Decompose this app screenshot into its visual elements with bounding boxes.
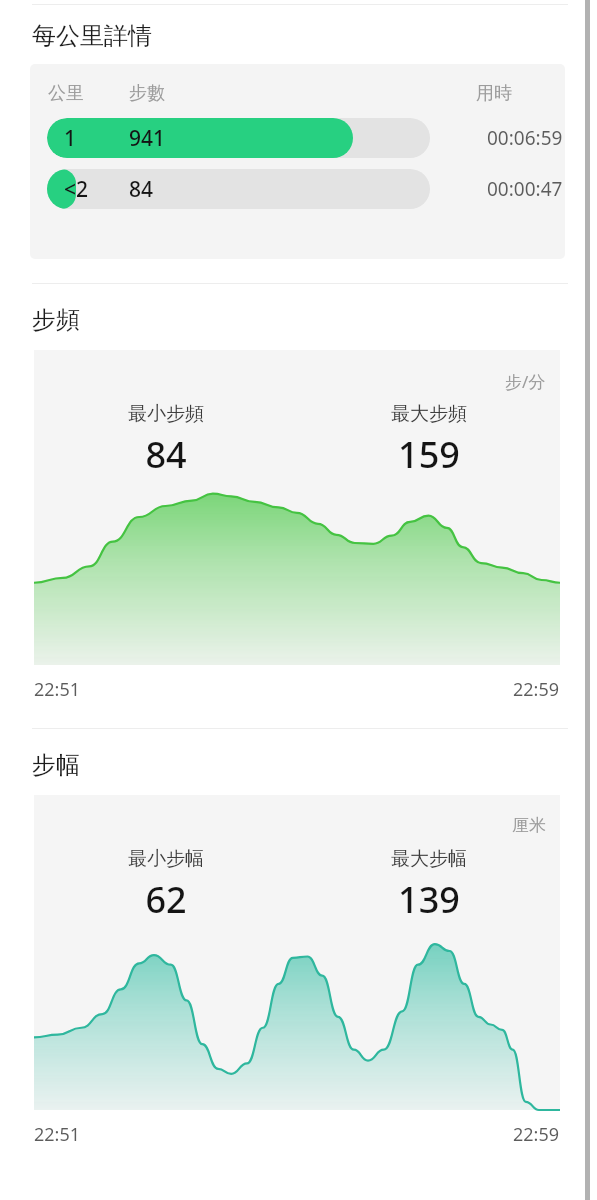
staticText: 步頻 <box>32 305 80 335</box>
staticText: 公里 <box>48 82 84 105</box>
staticText: 22:59 <box>513 1122 560 1147</box>
button[interactable]: <2 <box>30 169 565 209</box>
staticText: 厘米 <box>512 815 546 836</box>
button[interactable]: 步/分 <box>34 350 560 665</box>
staticText: 159 <box>398 430 460 479</box>
staticText: 139 <box>398 875 460 924</box>
staticText: 用時 <box>476 82 512 105</box>
staticText: 步幅 <box>32 750 80 780</box>
staticText: 941 <box>129 124 166 153</box>
staticText: 22:51 <box>34 1122 81 1147</box>
staticText: 步數 <box>129 82 165 105</box>
staticText: 00:06:59 <box>487 125 563 151</box>
staticText: 最大步頻 <box>391 402 467 426</box>
staticText: 00:00:47 <box>487 176 563 202</box>
button[interactable]: 1 <box>30 118 565 158</box>
button[interactable]: 公里 <box>30 64 565 259</box>
staticText: 22:51 <box>34 677 81 702</box>
staticText: <2 <box>64 175 89 204</box>
staticText: 最大步幅 <box>391 847 467 871</box>
button[interactable]: 厘米 <box>34 795 560 1110</box>
staticText: 最小步頻 <box>128 402 204 426</box>
staticText: 步/分 <box>505 370 546 393</box>
staticText: 84 <box>145 430 187 479</box>
staticText: 每公里詳情 <box>32 21 152 51</box>
staticText: 84 <box>129 175 154 204</box>
staticText: 62 <box>145 875 187 924</box>
staticText: 最小步幅 <box>128 847 204 871</box>
staticText: 1 <box>64 124 77 153</box>
staticText: 22:59 <box>513 677 560 702</box>
